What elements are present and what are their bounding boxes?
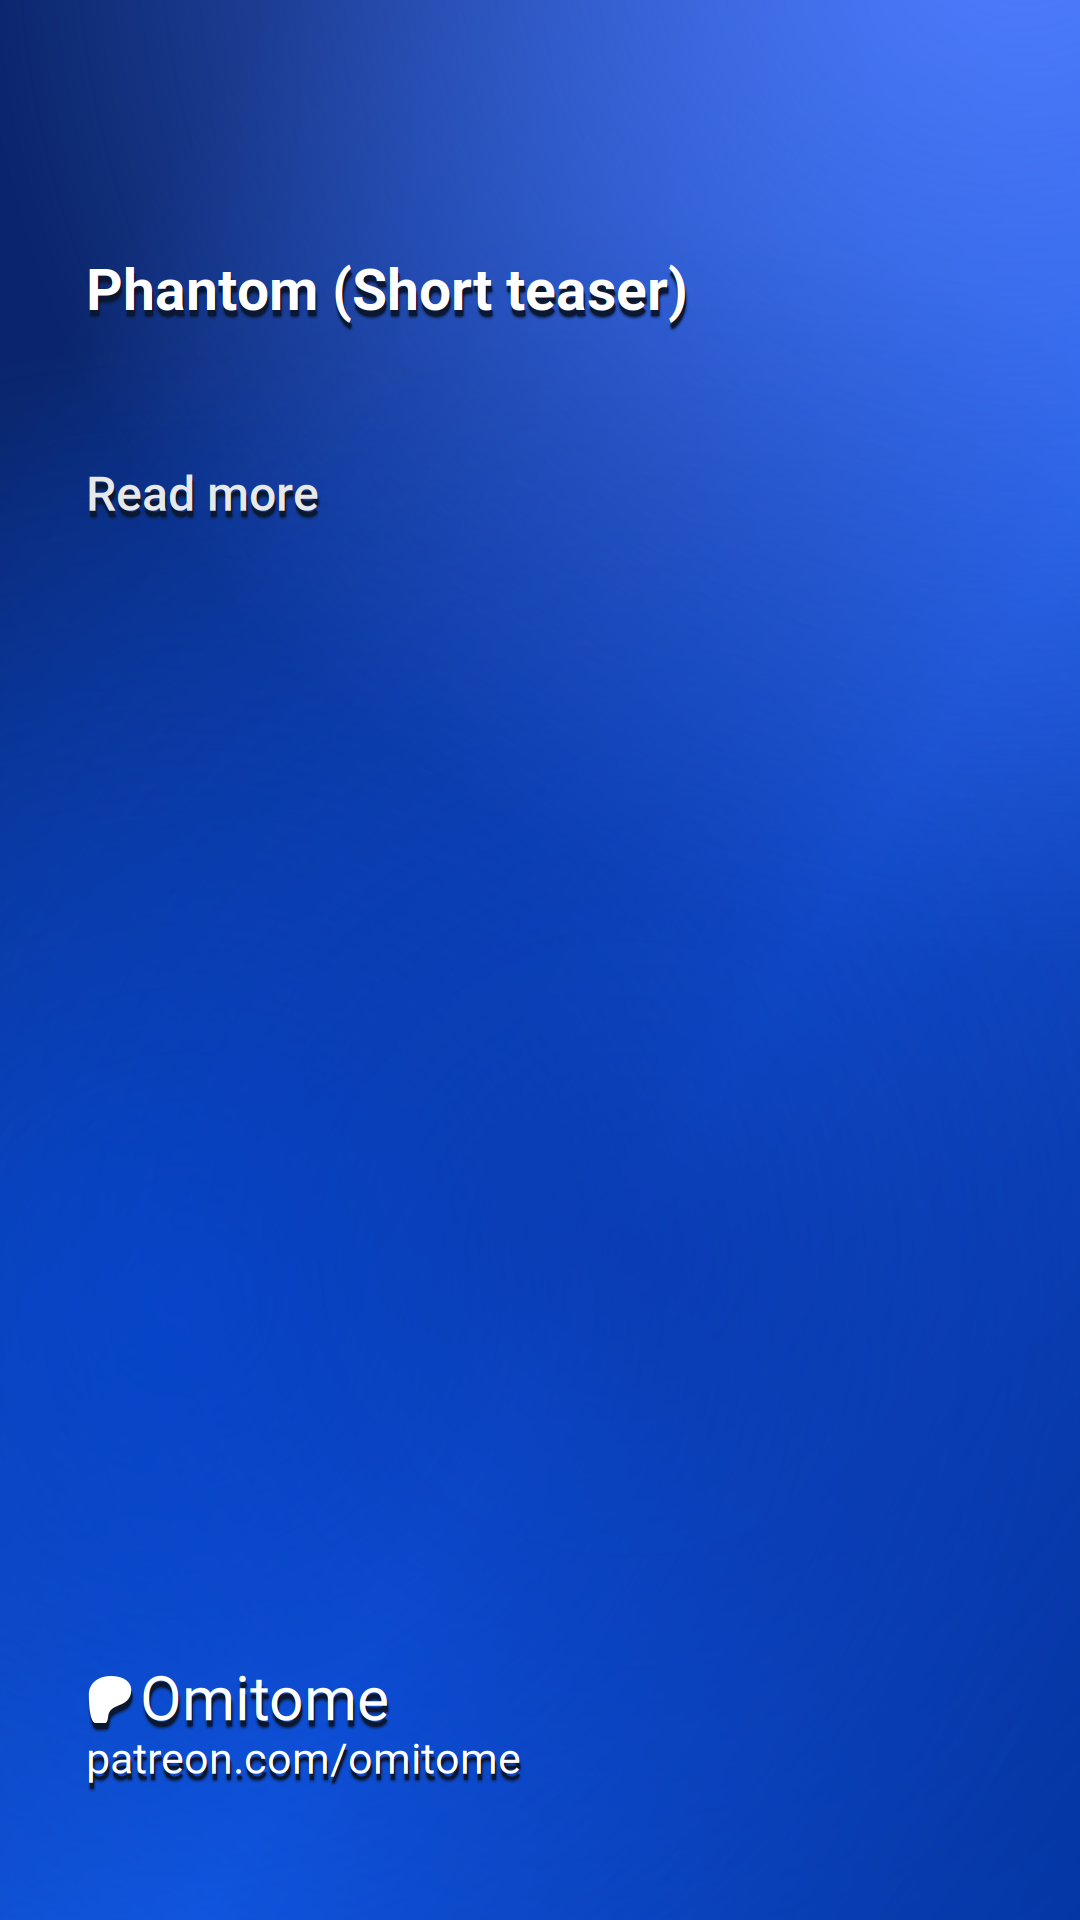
staticText: Phantom (Short teaser): [87, 263, 689, 330]
staticText: patreon.com/omitome: [87, 1740, 522, 1790]
staticText: Omitome: [140, 1664, 389, 1735]
staticText: Read more: [87, 472, 320, 529]
staticText: Phantom (Short teaser): [86, 257, 688, 324]
staticText: Read more: [86, 466, 319, 523]
button[interactable]: Read more: [86, 466, 319, 523]
button[interactable]: Omitome: [86, 1664, 521, 1785]
staticText: patreon.com/omitome: [86, 1734, 521, 1784]
staticText: Omitome: [141, 1670, 390, 1741]
